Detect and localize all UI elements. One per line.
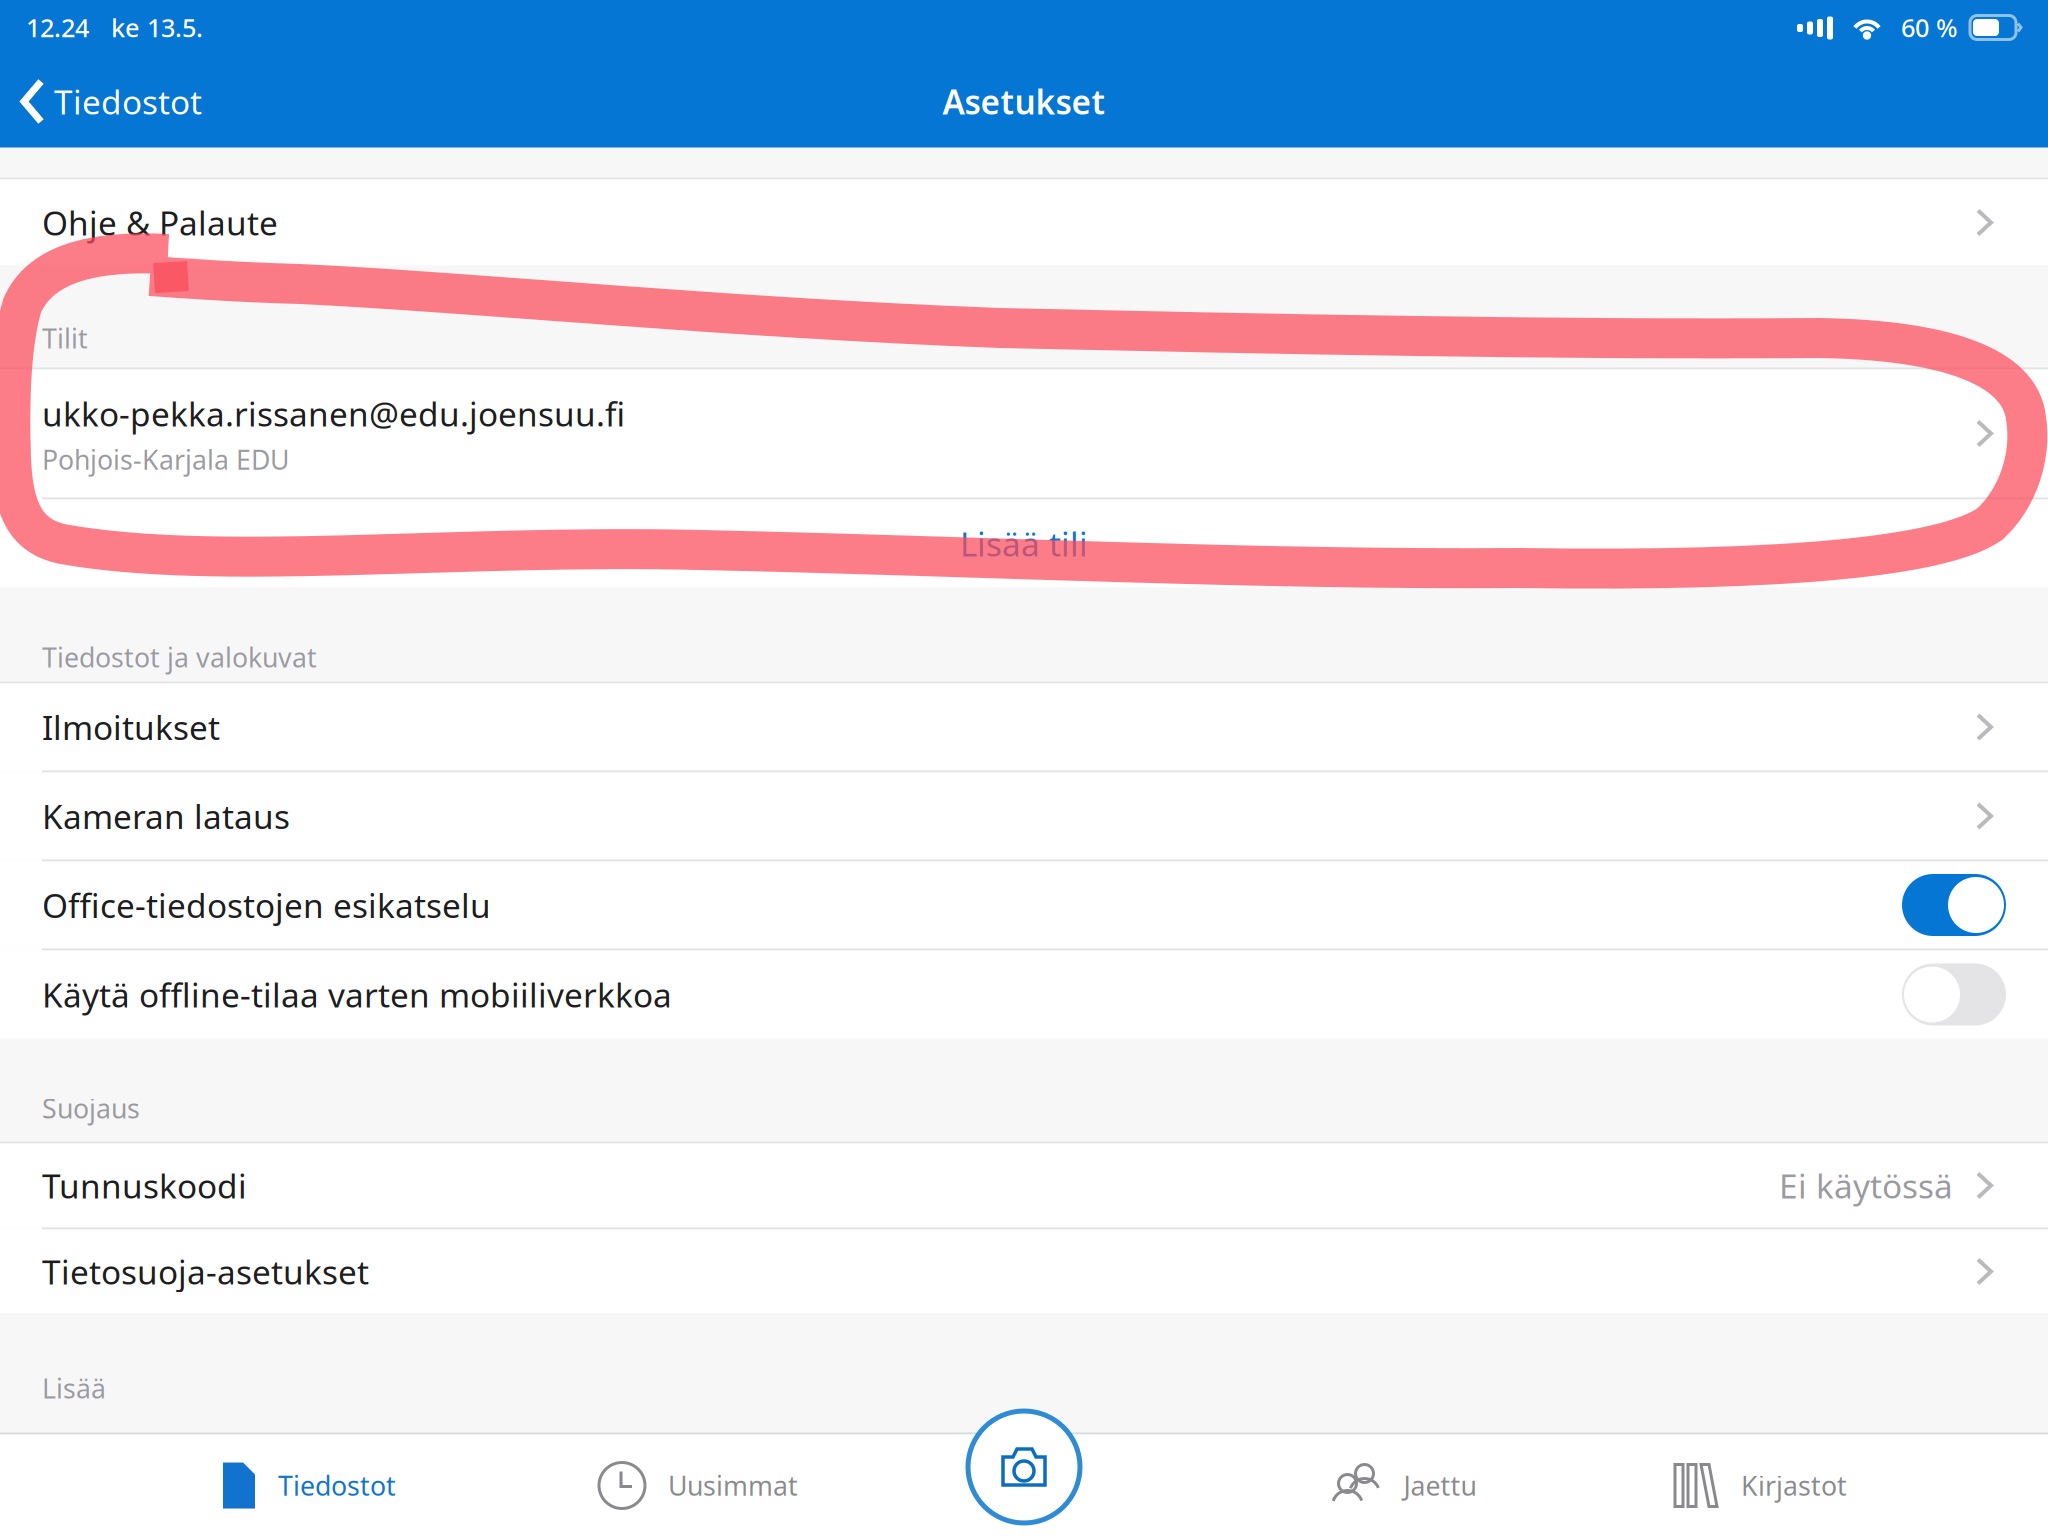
staticText: Tiedostot: [54, 79, 202, 124]
button[interactable]: Lisää tili: [0, 499, 2048, 587]
staticText: 12.24: [26, 11, 89, 44]
staticText: Tunnuskoodi: [42, 1163, 247, 1208]
button[interactable]: Tietosuoja-asetukset: [0, 1229, 2048, 1313]
staticText: Käytä offline-tilaa varten mobiiliverkko…: [42, 972, 672, 1017]
staticText: Jaettu: [1403, 1468, 1476, 1503]
button[interactable]: Ohje & Palaute: [0, 179, 2048, 265]
button[interactable]: Kameran lataus: [0, 772, 2048, 859]
staticText: Lisää tili: [960, 521, 1088, 566]
button[interactable]: Office-tiedostojen esikatselu: [0, 861, 2048, 948]
button[interactable]: Tiedostot: [0, 54, 220, 149]
staticText: Asetukset: [942, 79, 1105, 124]
button[interactable]: Jaettu: [1240, 1434, 1570, 1536]
button[interactable]: Tiedostot: [122, 1434, 496, 1536]
button[interactable]: ukko-pekka.rissanen@edu.joensuu.fi: [0, 369, 2048, 497]
staticText: Office-tiedostojen esikatselu: [42, 883, 491, 927]
staticText: ukko-pekka.rissanen@edu.joensuu.fi: [42, 391, 625, 436]
button[interactable]: Camera: [964, 1407, 1084, 1527]
staticText: ke 13.5.: [111, 11, 203, 44]
staticText: Lisää: [42, 1370, 106, 1406]
staticText: Ohje & Palaute: [42, 200, 278, 245]
staticText: Ilmoitukset: [42, 705, 220, 749]
staticText: 60 %: [1901, 11, 1958, 44]
staticText: Kirjastot: [1741, 1468, 1847, 1503]
button[interactable]: Kirjastot: [1570, 1434, 1950, 1536]
button[interactable]: Ilmoitukset: [0, 683, 2048, 770]
staticText: Tiedostot ja valokuvat: [42, 639, 317, 675]
staticText: Uusimmat: [668, 1468, 798, 1503]
staticText: Tietosuoja-asetukset: [42, 1249, 369, 1294]
staticText: Tilit: [42, 320, 88, 356]
staticText: Ei käytössä: [1779, 1163, 1953, 1208]
button[interactable]: Käytä offline-tilaa varten mobiiliverkko…: [0, 950, 2048, 1038]
staticText: Suojaus: [42, 1090, 140, 1126]
button[interactable]: Tunnuskoodi: [0, 1143, 2048, 1227]
staticText: Kameran lataus: [42, 794, 290, 838]
staticText: Tiedostot: [278, 1468, 396, 1503]
button[interactable]: Uusimmat: [496, 1434, 900, 1536]
staticText: Pohjois-Karjala EDU: [42, 442, 289, 477]
